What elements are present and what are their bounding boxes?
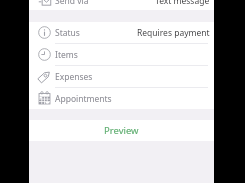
button[interactable]: Appointments (29, 88, 214, 109)
button[interactable]: Status (29, 22, 214, 43)
button[interactable]: Items (29, 44, 214, 65)
button[interactable]: Send via (29, 0, 214, 10)
staticText: Send via (55, 0, 89, 7)
button[interactable]: Preview (29, 120, 214, 141)
staticText: Requires payment (137, 27, 210, 39)
staticText: Appointments (55, 93, 112, 105)
staticText: Preview (104, 124, 139, 137)
staticText: Items (55, 49, 78, 61)
staticText: Status (55, 27, 80, 39)
staticText: Expenses (55, 71, 93, 83)
button[interactable]: Expenses (29, 66, 214, 87)
staticText: Text message (155, 0, 210, 7)
